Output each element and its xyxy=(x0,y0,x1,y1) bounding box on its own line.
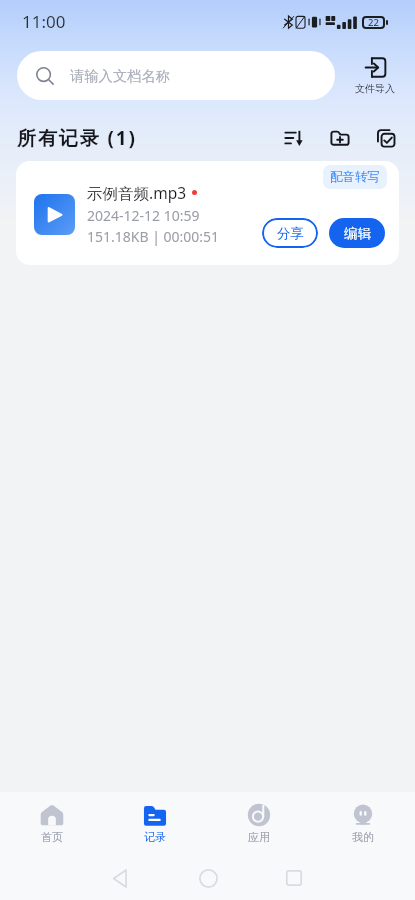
staticText: 文件导入 xyxy=(355,82,395,95)
button[interactable]: 我的 xyxy=(311,792,415,844)
staticText: 所有记录 (1) xyxy=(17,125,137,151)
staticText: 11:00 xyxy=(22,10,66,33)
button[interactable]: 应用 xyxy=(207,792,311,844)
button[interactable]: Sort xyxy=(276,120,312,156)
button[interactable]: 请输入文档名称 xyxy=(17,51,335,100)
staticText: 示例音频.mp3 xyxy=(87,182,187,203)
staticText: 22 xyxy=(368,16,379,29)
staticText: 首页 xyxy=(41,830,63,844)
staticText: 配音转写 xyxy=(330,169,380,185)
staticText: 2024-12-12 10:59 xyxy=(87,206,200,225)
staticText: 记录 xyxy=(144,830,166,844)
button[interactable]: 配音转写 xyxy=(16,161,399,265)
button[interactable]: Multi select xyxy=(368,120,404,156)
staticText: 请输入文档名称 xyxy=(70,67,171,85)
button[interactable]: 分享 xyxy=(262,218,318,248)
button[interactable]: Recents xyxy=(280,864,308,892)
button[interactable]: New folder xyxy=(322,120,358,156)
staticText: 编辑 xyxy=(344,225,371,242)
button[interactable]: Home xyxy=(194,864,222,892)
staticText: 151.18KB | 00:00:51 xyxy=(87,227,220,246)
button[interactable]: 编辑 xyxy=(329,218,385,248)
staticText: 分享 xyxy=(277,225,304,242)
button[interactable]: 文件导入 xyxy=(351,57,399,95)
button[interactable]: 记录 xyxy=(103,792,207,844)
button[interactable]: Back xyxy=(106,864,134,892)
button[interactable]: 首页 xyxy=(0,792,103,844)
staticText: 应用 xyxy=(248,830,270,844)
staticText: 我的 xyxy=(352,830,374,844)
